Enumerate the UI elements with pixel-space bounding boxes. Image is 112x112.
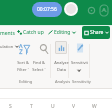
staticText: Sensitivity xyxy=(71,60,88,73)
button[interactable]: Sort & Filter ˅ xyxy=(15,60,30,73)
button[interactable]: Sensitivity xyxy=(74,42,85,54)
button[interactable]: Account xyxy=(64,2,78,16)
button[interactable]: Sort and Filter xyxy=(18,43,31,56)
button[interactable]: Catch up xyxy=(17,29,44,36)
staticText: Analysis xyxy=(55,79,71,84)
button[interactable]: Find and Select xyxy=(38,43,49,54)
staticText: Share xyxy=(90,29,104,36)
button[interactable]: Search xyxy=(85,4,97,16)
staticText: 00:07:56 xyxy=(37,6,57,13)
staticText: Editing xyxy=(19,79,33,84)
staticText: Sensitivity xyxy=(72,79,91,84)
button[interactable]: S xyxy=(0,101,21,112)
button[interactable]: ulation xyxy=(0,44,19,49)
staticText: V xyxy=(72,103,76,110)
staticText: Find & Select ˅ xyxy=(32,60,46,73)
button[interactable]: Editing xyxy=(48,29,76,36)
button[interactable]: W xyxy=(84,101,105,112)
button[interactable]: U xyxy=(42,101,63,112)
staticText: Editing xyxy=(54,29,71,36)
staticText: U xyxy=(51,103,55,110)
button[interactable]: Collapse ribbon xyxy=(101,86,111,96)
staticText: Analyze Data xyxy=(54,60,69,73)
button[interactable]: ments xyxy=(0,30,15,37)
button[interactable]: 00:07:56 xyxy=(32,2,62,17)
button[interactable]: Analyze Data xyxy=(55,41,67,54)
button[interactable]: Find & Select ˅ xyxy=(31,60,46,73)
button[interactable]: T xyxy=(21,101,42,112)
button[interactable]: V xyxy=(63,101,84,112)
button[interactable]: Share xyxy=(82,26,110,39)
staticText: ulation xyxy=(0,44,14,49)
button[interactable]: More options xyxy=(98,3,110,17)
staticText: T xyxy=(30,103,33,110)
staticText: W xyxy=(92,103,97,110)
staticText: S xyxy=(9,103,12,110)
button[interactable]: Sensitivity xyxy=(71,60,88,73)
staticText: Sort & Filter ˅ xyxy=(17,60,29,73)
button[interactable]: Analyze Data xyxy=(53,60,69,73)
staticText: Catch up xyxy=(23,29,44,36)
